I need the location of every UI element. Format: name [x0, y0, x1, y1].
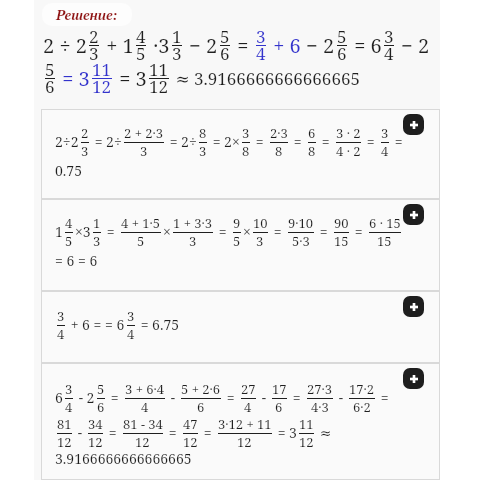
staticText: 47	[183, 415, 198, 433]
button[interactable]: 3	[41, 291, 440, 363]
staticText: 1	[93, 214, 101, 232]
staticText: 34	[88, 415, 103, 433]
staticText: 12	[92, 75, 112, 98]
staticText: =	[316, 222, 332, 241]
staticText: 12	[88, 433, 103, 451]
staticText: 4	[127, 325, 135, 343]
staticText: 6	[337, 42, 347, 65]
staticText: =	[105, 423, 121, 442]
staticText: 3·12 + 11	[218, 415, 272, 433]
staticText: 12	[135, 433, 150, 451]
staticText: 6	[197, 398, 205, 416]
staticText: 4	[57, 325, 65, 343]
staticText: 3	[140, 142, 148, 160]
staticText: =	[215, 222, 231, 241]
staticText: 2÷2	[55, 132, 79, 151]
button[interactable]: 2÷2	[41, 109, 440, 199]
staticText: 3	[172, 42, 182, 65]
staticText: 4	[381, 142, 389, 160]
staticText: = 3	[274, 423, 297, 442]
staticText: = 6	[349, 32, 382, 59]
staticText: 8	[308, 142, 316, 160]
staticText: 11	[92, 58, 112, 81]
staticText: 8	[275, 142, 283, 160]
staticText: 2·3	[270, 124, 288, 142]
staticText: =	[107, 388, 123, 407]
staticText: ·3	[148, 32, 170, 59]
staticText: =	[363, 132, 379, 151]
staticText: 3	[381, 124, 389, 142]
staticText: 12	[57, 433, 72, 451]
staticText: + 6	[268, 32, 301, 59]
staticText: 4	[384, 42, 394, 65]
staticText: + 6 = = 6	[67, 315, 125, 334]
button[interactable]: 6	[41, 363, 440, 480]
staticText: 5	[220, 25, 230, 48]
button[interactable]: 1	[41, 199, 440, 291]
staticText: 5	[65, 232, 73, 250]
staticText: ×	[163, 222, 171, 241]
staticText: =	[351, 222, 367, 241]
staticText: ×	[243, 222, 251, 241]
staticText: 1	[172, 25, 182, 48]
staticText: 5 + 2·6	[181, 380, 221, 398]
staticText: 3 · 2	[336, 124, 361, 142]
staticText: = 3	[57, 65, 90, 92]
staticText: 3	[127, 307, 135, 325]
staticText: 4·3	[311, 398, 329, 416]
staticText: 2 + 2·3	[124, 124, 164, 142]
button[interactable]: Expand step	[403, 204, 424, 225]
staticText: =	[270, 222, 286, 241]
button[interactable]: Expand step	[403, 368, 424, 389]
staticText: 4	[256, 42, 266, 65]
staticText: 6·2	[353, 398, 371, 416]
staticText: 4	[65, 398, 73, 416]
staticText: - 2	[75, 388, 95, 407]
staticText: 3	[93, 232, 101, 250]
staticText: 6	[55, 388, 63, 407]
staticText: 4	[141, 398, 149, 416]
staticText: = 2×	[209, 132, 240, 151]
staticText: 27	[241, 380, 256, 398]
staticText: =	[223, 388, 239, 407]
staticText: Решение:	[56, 5, 118, 24]
button[interactable]: Expand step	[403, 296, 424, 317]
staticText: 9	[233, 214, 241, 232]
staticText: 11	[299, 415, 314, 433]
staticText: − 2	[184, 32, 218, 59]
staticText: 12	[299, 433, 314, 451]
staticText: = 6 = 6	[55, 251, 98, 270]
staticText: = 3	[114, 65, 147, 92]
staticText: 3	[242, 124, 250, 142]
staticText: 5	[136, 42, 146, 65]
staticText: = 2÷	[91, 132, 122, 151]
staticText: 17·2	[349, 380, 375, 398]
staticText: -	[167, 388, 179, 407]
staticText: =	[165, 423, 181, 442]
staticText: 6 · 15	[369, 214, 401, 232]
button[interactable]: Expand step	[403, 114, 424, 135]
staticText: ≈ 3.9166666666666665	[171, 67, 360, 90]
staticText: =	[391, 132, 407, 151]
staticText: 90	[334, 214, 349, 232]
staticText: 3 + 6·4	[125, 380, 165, 398]
staticText: =	[290, 132, 306, 151]
staticText: =	[318, 132, 334, 151]
staticText: 5	[97, 380, 105, 398]
staticText: 11	[149, 58, 169, 81]
staticText: 3	[57, 307, 65, 325]
staticText: = 6.75	[137, 315, 180, 334]
staticText: 12	[183, 433, 198, 451]
staticText: 6	[220, 42, 230, 65]
staticText: 17	[272, 380, 287, 398]
staticText: 0.75	[55, 161, 82, 180]
staticText: =	[103, 222, 119, 241]
staticText: 2 ÷ 2	[43, 32, 87, 59]
staticText: 15	[377, 232, 392, 250]
staticText: 12	[149, 75, 169, 98]
staticText: -	[335, 388, 347, 407]
staticText: 4	[244, 398, 252, 416]
staticText: 5	[233, 232, 241, 250]
staticText: 6	[45, 75, 55, 98]
staticText: 12	[237, 433, 252, 451]
